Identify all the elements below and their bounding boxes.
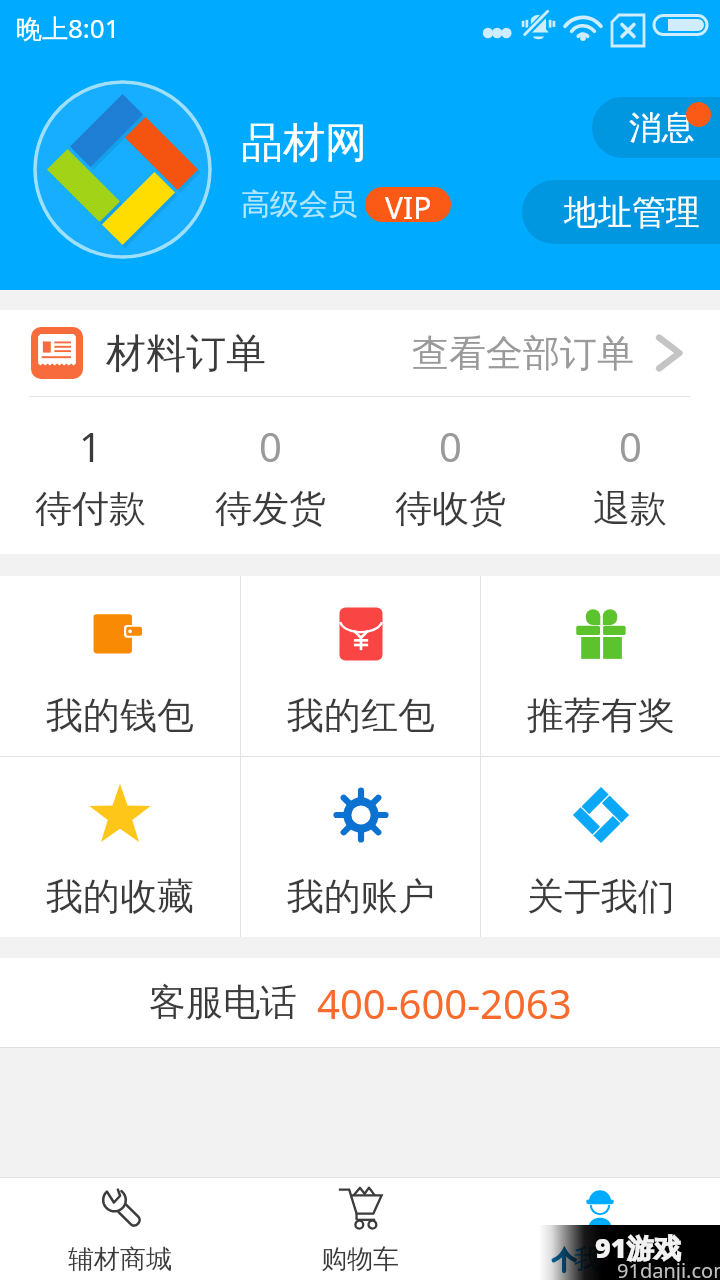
staticText: 消息	[629, 107, 695, 149]
button[interactable]: 消息	[592, 97, 720, 158]
staticText: 我的钱包	[46, 692, 194, 739]
staticText: 我的账户	[287, 873, 435, 920]
staticText: 晚上8:01	[16, 10, 120, 46]
staticText: 1	[79, 419, 102, 473]
button[interactable]: Scroll to top	[528, 1214, 600, 1280]
staticText: 0	[439, 419, 462, 473]
button[interactable]: 辅材商城	[0, 1178, 240, 1280]
staticText: 待收货	[395, 485, 506, 532]
staticText: 0	[619, 419, 642, 473]
staticText: 品材网	[241, 117, 367, 170]
staticText: VIP	[385, 187, 432, 222]
button[interactable]: 我的红包	[241, 576, 480, 756]
staticText: 客服电话	[149, 979, 297, 1026]
button[interactable]: 我的收藏	[0, 757, 240, 937]
staticText: 待付款	[35, 485, 146, 532]
button[interactable]: 关于我们	[481, 757, 720, 937]
staticText: 关于我们	[527, 873, 675, 920]
button[interactable]: 购物车	[240, 1178, 480, 1280]
button[interactable]: VIP	[365, 187, 451, 222]
button[interactable]: 0	[360, 397, 540, 554]
button[interactable]: 1	[0, 397, 180, 554]
button[interactable]: Avatar	[33, 80, 212, 259]
staticText: 91游戏	[595, 1229, 681, 1266]
staticText: 材料订单	[106, 328, 266, 378]
button[interactable]: 我的账户	[241, 757, 480, 937]
staticText: 400-600-2063	[317, 976, 572, 1030]
staticText: 我的红包	[287, 692, 435, 739]
staticText: 购物车	[321, 1243, 399, 1276]
staticText: 辅材商城	[68, 1243, 172, 1276]
staticText: 退款	[593, 485, 667, 532]
button[interactable]: 推荐有奖	[481, 576, 720, 756]
button[interactable]: 地址管理	[522, 180, 720, 244]
staticText: 地址管理	[564, 191, 700, 234]
button[interactable]: 材料订单	[0, 310, 720, 396]
button[interactable]: 0	[540, 397, 720, 554]
staticText: 91danji.com	[617, 1257, 720, 1280]
staticText: 待发货	[215, 485, 326, 532]
button[interactable]: 客服电话	[0, 958, 720, 1047]
staticText: 我的	[574, 1243, 626, 1276]
staticText: 我的收藏	[46, 873, 194, 920]
button[interactable]: 我的	[480, 1178, 720, 1280]
staticText: 0	[259, 419, 282, 473]
button[interactable]: 我的钱包	[0, 576, 240, 756]
staticText: 高级会员	[241, 186, 357, 223]
staticText: 推荐有奖	[527, 692, 675, 739]
button[interactable]: 0	[180, 397, 360, 554]
staticText: 查看全部订单	[412, 330, 634, 377]
